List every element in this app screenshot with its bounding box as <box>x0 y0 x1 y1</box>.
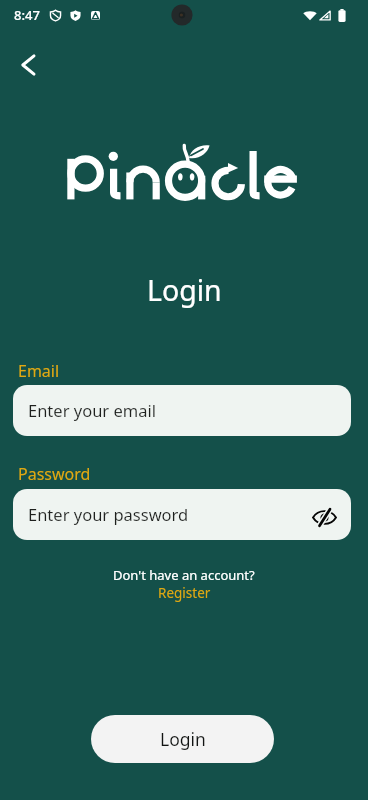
button[interactable]: Login <box>91 715 274 763</box>
staticText: Enter your password <box>28 503 189 525</box>
button[interactable]: Show password <box>309 502 339 532</box>
staticText: Enter your email <box>28 399 156 421</box>
staticText: 8:47 <box>14 6 40 24</box>
staticText: Login <box>160 727 206 751</box>
button[interactable]: Enter your email <box>13 385 351 436</box>
staticText: Email <box>18 360 60 382</box>
staticText: Password <box>18 463 91 485</box>
staticText: Login <box>147 271 222 310</box>
button[interactable]: Enter your password <box>13 489 351 540</box>
button[interactable]: Register <box>158 584 211 602</box>
staticText: Don't have an account? <box>113 566 255 584</box>
button[interactable]: Back <box>8 45 48 85</box>
staticText: Register <box>158 584 211 602</box>
